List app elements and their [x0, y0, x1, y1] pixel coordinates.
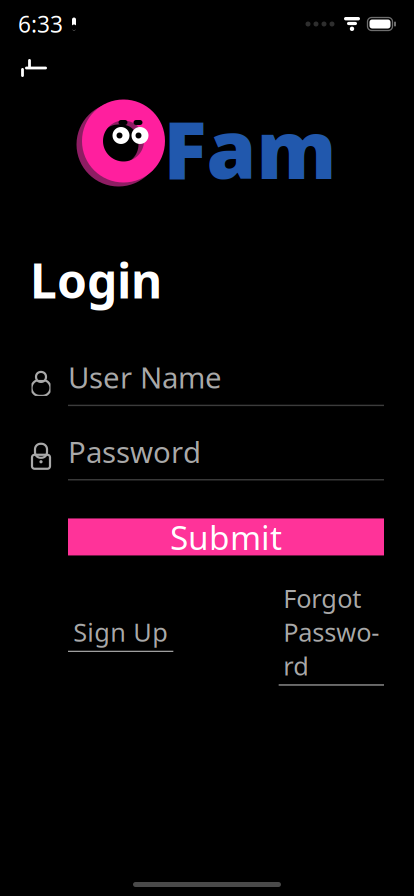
staticText: 6:33	[18, 9, 63, 39]
staticText: User Name	[68, 358, 222, 397]
button[interactable]: Back	[6, 46, 60, 90]
button[interactable]: Forgot Password	[279, 576, 384, 691]
staticText: Submit	[170, 515, 282, 559]
staticText: Fam	[163, 95, 336, 201]
staticText: Sign Up	[73, 615, 168, 649]
staticText: Forgot Password	[283, 581, 379, 682]
staticText: Password	[68, 432, 201, 471]
button[interactable]: Sign Up	[68, 610, 173, 657]
button[interactable]: Submit	[68, 518, 384, 555]
staticText: Login	[30, 248, 162, 312]
